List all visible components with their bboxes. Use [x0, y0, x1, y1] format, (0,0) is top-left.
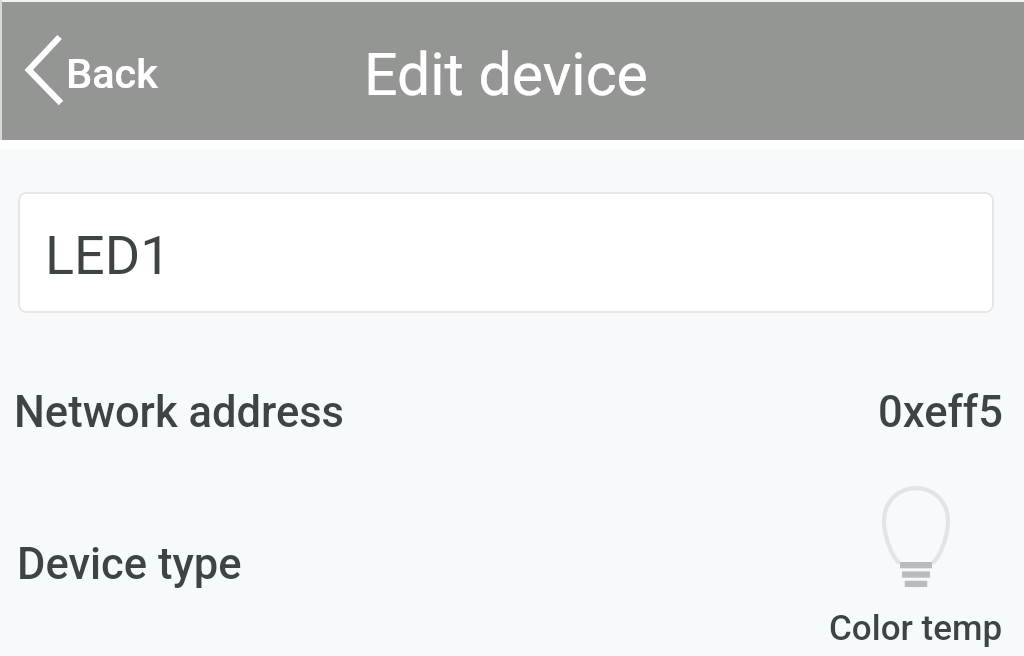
other: Back [26, 34, 61, 106]
staticText: Device type [17, 539, 242, 590]
other: Color temperature bulb [882, 486, 950, 588]
staticText: Back [66, 49, 158, 98]
staticText: 0xeff5 [878, 387, 1003, 438]
button[interactable]: Device type [0, 470, 1024, 656]
button[interactable]: LED1 [18, 192, 994, 313]
staticText: LED1 [45, 224, 171, 287]
staticText: Edit device [364, 40, 648, 109]
button[interactable]: Network address [0, 372, 1024, 452]
button[interactable]: Back [14, 24, 163, 116]
staticText: Network address [14, 387, 345, 438]
staticText: Color temp [829, 608, 1003, 649]
